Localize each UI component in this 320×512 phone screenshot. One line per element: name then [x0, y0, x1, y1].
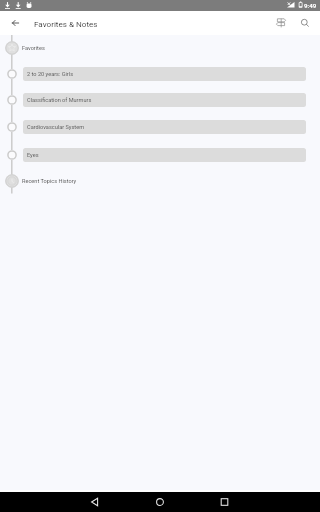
staticText: Cardiovascular System: [27, 124, 85, 131]
staticText: Eyes: [27, 152, 39, 159]
staticText: 9:49: [304, 2, 317, 9]
button[interactable]: Recent Topics History: [0, 174, 320, 188]
staticText: 2 to 20 years: Girls: [27, 71, 74, 78]
button[interactable]: Classification of Murmurs: [23, 93, 306, 107]
button[interactable]: 2 to 20 years: Girls: [23, 67, 306, 81]
button[interactable]: Eyes: [23, 148, 306, 162]
staticText: Favorites & Notes: [34, 19, 98, 28]
staticText: Favorites: [22, 45, 45, 52]
button[interactable]: Back: [0, 11, 30, 35]
button[interactable]: Cardiovascular System: [23, 120, 306, 134]
button[interactable]: Sort by: [269, 11, 293, 35]
button[interactable]: Search: [293, 11, 317, 35]
staticText: Recent Topics History: [22, 178, 77, 185]
button[interactable]: Favorites: [0, 41, 320, 55]
staticText: Classification of Murmurs: [27, 97, 92, 104]
